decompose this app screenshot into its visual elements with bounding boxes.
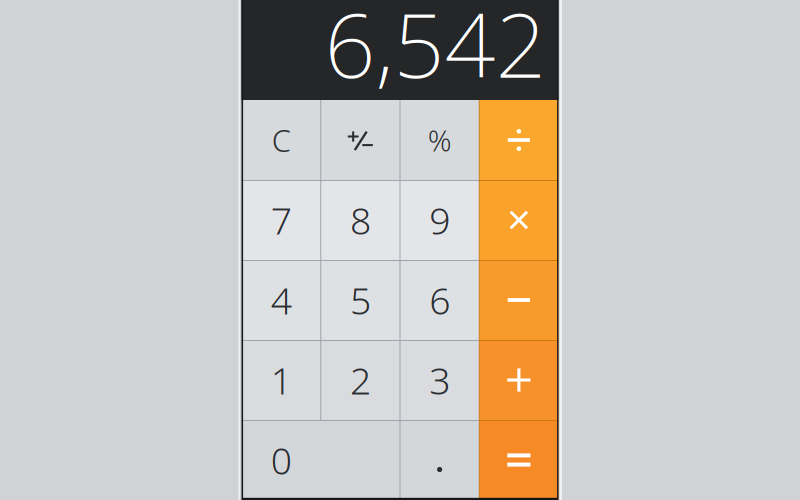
staticText: 4 bbox=[271, 275, 292, 325]
button[interactable]: Multiply bbox=[479, 180, 558, 260]
button[interactable]: 9 bbox=[400, 180, 479, 260]
staticText: C bbox=[272, 120, 291, 160]
button[interactable]: 1 bbox=[241, 340, 321, 420]
button[interactable]: Decimal point bbox=[400, 420, 479, 500]
button[interactable]: % bbox=[400, 100, 479, 180]
staticText: 7 bbox=[271, 195, 292, 245]
button[interactable]: 6 bbox=[400, 260, 479, 340]
button[interactable]: C bbox=[241, 100, 321, 180]
staticText: 0 bbox=[271, 435, 292, 485]
button[interactable]: 0 bbox=[241, 420, 400, 500]
button[interactable]: Add bbox=[479, 340, 558, 420]
button[interactable]: Toggle sign bbox=[321, 100, 400, 180]
button[interactable]: 2 bbox=[321, 340, 400, 420]
staticText: 8 bbox=[350, 195, 371, 245]
staticText: 5 bbox=[350, 275, 371, 325]
staticText: 9 bbox=[429, 195, 450, 245]
staticText: 3 bbox=[429, 355, 450, 405]
button[interactable]: Equals bbox=[479, 420, 558, 500]
staticText: 6 bbox=[429, 275, 450, 325]
button[interactable]: 8 bbox=[321, 180, 400, 260]
button[interactable]: Divide bbox=[479, 100, 558, 180]
button[interactable]: Subtract bbox=[479, 260, 558, 340]
staticText: 1 bbox=[271, 355, 292, 405]
button[interactable]: 4 bbox=[241, 260, 321, 340]
staticText: 2 bbox=[350, 355, 371, 405]
button[interactable]: 7 bbox=[241, 180, 321, 260]
staticText: % bbox=[428, 120, 452, 159]
button[interactable]: 5 bbox=[321, 260, 400, 340]
button[interactable]: 3 bbox=[400, 340, 479, 420]
staticText: 6,542 bbox=[324, 0, 546, 102]
